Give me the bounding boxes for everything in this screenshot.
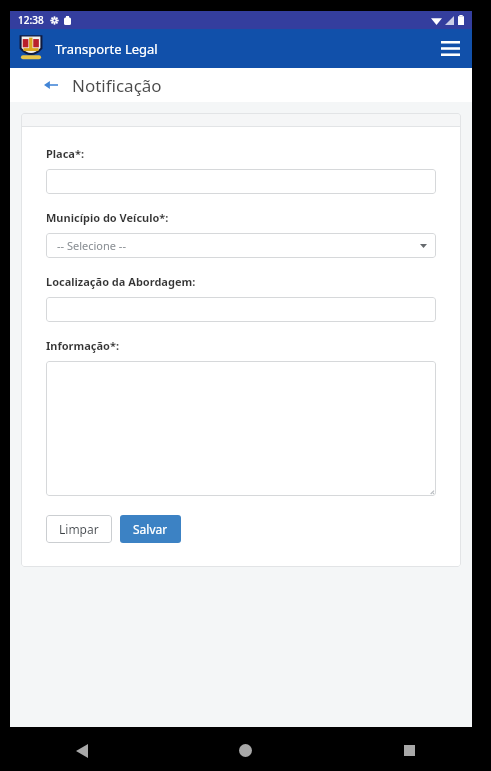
button[interactable]: Back	[0, 730, 163, 771]
staticText: Notificação	[72, 74, 162, 97]
button[interactable]: Text field	[46, 169, 436, 194]
staticText: Localização da Abordagem:	[46, 274, 196, 289]
button[interactable]: Home	[163, 730, 327, 771]
staticText: Informação*:	[46, 338, 119, 353]
staticText: Limpar	[59, 521, 99, 537]
button[interactable]: Open menu	[428, 29, 472, 68]
staticText: Município do Veículo*:	[46, 210, 169, 225]
button[interactable]: Salvar	[120, 515, 181, 543]
staticText: Placa*:	[46, 146, 85, 161]
button[interactable]: Recent apps	[327, 730, 491, 771]
staticText: 12:38	[18, 13, 44, 27]
button[interactable]: Limpar	[46, 515, 112, 543]
staticText: -- Selecione --	[57, 238, 126, 253]
button[interactable]: Information text area	[46, 361, 436, 496]
button[interactable]: Back	[40, 74, 62, 96]
staticText: Salvar	[133, 521, 168, 537]
button[interactable]: -- Selecione --	[46, 233, 436, 258]
staticText: Transporte Legal	[55, 40, 158, 58]
button[interactable]: Text field	[46, 297, 436, 322]
